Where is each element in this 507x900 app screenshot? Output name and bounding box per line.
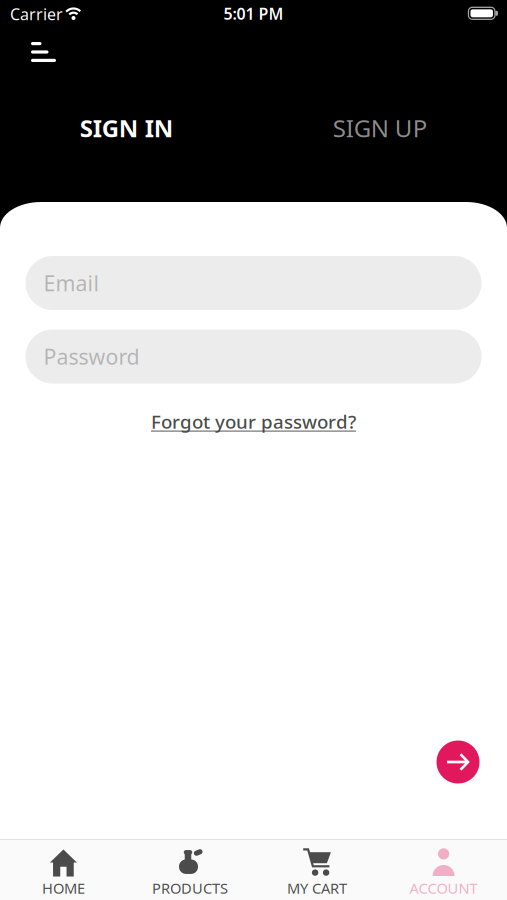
button[interactable]: Menu xyxy=(31,42,56,62)
button[interactable]: HOME xyxy=(0,840,127,900)
button[interactable]: Email xyxy=(25,256,481,310)
staticText: Forgot your password? xyxy=(151,409,356,434)
staticText: MY CART xyxy=(287,878,347,898)
staticText: 5:01 PM xyxy=(223,3,283,24)
staticText: HOME xyxy=(42,878,85,898)
button[interactable]: MY CART xyxy=(253,840,380,900)
staticText: SIGN IN xyxy=(80,112,174,144)
button[interactable]: Sign in xyxy=(436,740,479,783)
staticText: Carrier xyxy=(10,3,63,25)
staticText: PRODUCTS xyxy=(152,878,228,898)
button[interactable]: ACCOUNT xyxy=(380,840,507,900)
button[interactable]: SIGN IN xyxy=(80,112,174,144)
staticText: ACCOUNT xyxy=(410,878,478,898)
button[interactable]: Password xyxy=(25,329,481,383)
staticText: Email xyxy=(43,269,99,297)
staticText: Password xyxy=(43,342,139,371)
staticText: SIGN UP xyxy=(333,112,428,144)
button[interactable]: SIGN UP xyxy=(333,112,428,144)
button[interactable]: PRODUCTS xyxy=(127,840,253,900)
button[interactable]: Forgot your password? xyxy=(151,409,356,434)
